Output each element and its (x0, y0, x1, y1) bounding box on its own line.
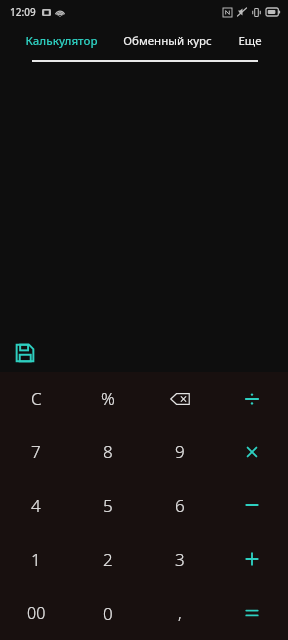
staticText: 8 (103, 440, 113, 463)
staticText: % (101, 387, 115, 410)
staticText: 9 (175, 440, 185, 463)
staticText: 5 (103, 494, 113, 517)
staticText: Калькулятор (25, 33, 98, 49)
staticText: 00 (27, 602, 46, 624)
button[interactable]: , (144, 586, 216, 640)
button[interactable]: Обменный курс (122, 24, 212, 58)
button[interactable]: 0 (72, 586, 144, 640)
button[interactable]: Equals (216, 586, 288, 640)
staticText: 7 (31, 440, 41, 463)
button[interactable]: Калькулятор (0, 24, 122, 58)
button[interactable]: Divide (216, 372, 288, 425)
staticText: C (31, 387, 42, 410)
button[interactable]: % (72, 372, 144, 425)
staticText: 0 (103, 602, 113, 625)
button[interactable]: Add (216, 532, 288, 586)
button[interactable]: Еще (212, 24, 288, 58)
staticText: 3 (175, 548, 185, 571)
button[interactable]: 5 (72, 478, 144, 532)
button[interactable]: 3 (144, 532, 216, 586)
staticText: , (178, 602, 182, 624)
button[interactable]: 1 (0, 532, 72, 586)
button[interactable]: 9 (144, 425, 216, 478)
button[interactable]: Backspace (144, 372, 216, 425)
button[interactable]: Subtract (216, 478, 288, 532)
button[interactable]: 4 (0, 478, 72, 532)
button[interactable]: 2 (72, 532, 144, 586)
button[interactable]: 8 (72, 425, 144, 478)
button[interactable]: Save (14, 342, 36, 364)
staticText: Еще (238, 33, 262, 49)
button[interactable]: C (0, 372, 72, 425)
button[interactable]: 7 (0, 425, 72, 478)
staticText: 1 (31, 548, 41, 571)
staticText: Обменный курс (123, 33, 212, 49)
staticText: 2 (103, 548, 113, 571)
staticText: 4 (31, 494, 41, 517)
staticText: 12:09 (10, 5, 36, 19)
button[interactable]: Multiply (216, 425, 288, 478)
button[interactable]: 6 (144, 478, 216, 532)
button[interactable]: 00 (0, 586, 72, 640)
staticText: 6 (175, 494, 185, 517)
